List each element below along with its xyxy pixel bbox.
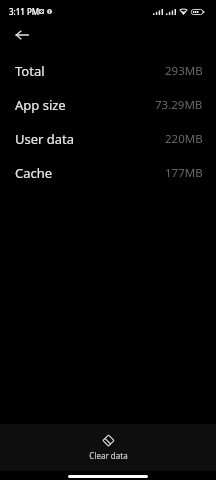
button[interactable]: Back: [9, 22, 35, 48]
staticText: 3:11 PM: [9, 6, 40, 17]
staticText: 293MB: [165, 63, 203, 79]
staticText: Cache: [15, 164, 53, 182]
staticText: 220MB: [165, 131, 203, 147]
button[interactable]: Cache: [0, 156, 216, 190]
staticText: Clear data: [89, 450, 128, 461]
staticText: 177MB: [165, 165, 203, 181]
staticText: 73.29MB: [155, 97, 203, 113]
staticText: Total: [15, 62, 45, 80]
staticText: App size: [15, 96, 66, 114]
button[interactable]: Total: [0, 54, 216, 88]
button[interactable]: Clear data: [72, 424, 144, 471]
button[interactable]: User data: [0, 122, 216, 156]
staticText: User data: [15, 130, 75, 148]
button[interactable]: App size: [0, 88, 216, 122]
